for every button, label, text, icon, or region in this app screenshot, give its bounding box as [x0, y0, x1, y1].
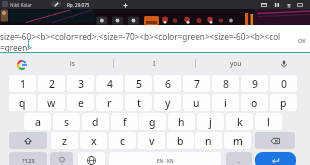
button[interactable]: you [195, 53, 277, 74]
button[interactable]: More [296, 1, 304, 8]
staticText: n [205, 134, 212, 148]
button[interactable]: j [197, 113, 224, 130]
button[interactable]: 5 [125, 75, 152, 92]
staticText: OK [298, 37, 306, 44]
button[interactable]: Enter [255, 152, 296, 165]
staticText: 6 [165, 77, 171, 91]
staticText: k [237, 115, 243, 129]
staticText: b [177, 134, 184, 148]
staticText: i [224, 96, 227, 110]
staticText: Nikil Kolar [10, 2, 32, 8]
staticText: EN - KN [157, 158, 174, 164]
button[interactable]: v [138, 132, 165, 149]
staticText: 9 [252, 77, 258, 91]
button[interactable]: l [255, 113, 282, 130]
staticText: p [280, 96, 287, 110]
button[interactable]: m [224, 132, 251, 149]
staticText: 5 [136, 77, 142, 91]
button[interactable]: a [24, 113, 51, 130]
staticText: c [120, 134, 126, 148]
staticText: e [78, 96, 84, 110]
staticText: size=-60><b><color=red>.<size=-70><b><co… [0, 31, 281, 42]
button[interactable]: Friends [273, 1, 281, 8]
button[interactable]: c [109, 132, 136, 149]
staticText: u [193, 96, 200, 110]
staticText: is [70, 59, 75, 68]
button[interactable]: e [67, 94, 94, 111]
button[interactable]: k [226, 113, 253, 130]
button[interactable]: Emoji [50, 152, 73, 165]
staticText: I [153, 59, 156, 68]
button[interactable]: 1 [9, 75, 36, 92]
button[interactable]: q [9, 94, 36, 111]
button[interactable]: z [51, 132, 78, 149]
button[interactable]: g [139, 113, 166, 130]
button[interactable]: b [167, 132, 194, 149]
button[interactable]: d [82, 113, 109, 130]
button[interactable]: 6 [154, 75, 181, 92]
staticText: j [209, 115, 212, 129]
button[interactable]: 8 [212, 75, 239, 92]
staticText: Rp. 29.075 [67, 2, 90, 8]
button[interactable]: Voice input [270, 57, 298, 71]
button[interactable]: Change language [78, 152, 105, 165]
staticText: s [64, 115, 70, 129]
button[interactable]: Space [109, 152, 221, 165]
button[interactable]: Backspace [255, 132, 295, 149]
staticText: w [47, 96, 56, 110]
button[interactable]: . [226, 152, 252, 165]
button[interactable]: ?123 [9, 152, 47, 165]
staticText: x [91, 134, 97, 148]
button[interactable]: 4 [96, 75, 123, 92]
button[interactable]: Google [10, 57, 33, 72]
button[interactable]: 7 [183, 75, 210, 92]
staticText: 3 [78, 77, 84, 91]
button[interactable]: 9 [241, 75, 268, 92]
staticText: ?123 [22, 157, 35, 165]
staticText: 0 [281, 77, 287, 91]
staticText: 4 [107, 77, 113, 91]
button[interactable]: n [195, 132, 222, 149]
button[interactable]: y [154, 94, 181, 111]
staticText: a [35, 115, 41, 129]
staticText: d [92, 115, 99, 129]
staticText: v [149, 134, 155, 148]
button[interactable]: 3 [67, 75, 94, 92]
button[interactable]: x [80, 132, 107, 149]
staticText: o [251, 96, 258, 110]
button[interactable]: w [38, 94, 65, 111]
button[interactable]: Add coins [122, 2, 129, 9]
button[interactable]: r [96, 94, 123, 111]
staticText: m [233, 134, 243, 148]
staticText: 1 [20, 77, 26, 91]
button[interactable]: p [270, 94, 297, 111]
button[interactable]: Edit name [51, 1, 61, 7]
button[interactable]: OK [296, 35, 308, 46]
staticText: 2 [49, 77, 55, 91]
staticText: 8 [223, 77, 229, 91]
button[interactable]: is [31, 53, 113, 74]
button[interactable]: I [113, 53, 195, 74]
staticText: t [137, 96, 141, 110]
staticText: r [107, 96, 112, 110]
button[interactable]: Shift [9, 132, 47, 149]
button[interactable]: f [111, 113, 138, 130]
staticText: y [165, 96, 171, 110]
staticText: f [123, 115, 127, 129]
button[interactable]: t [125, 94, 152, 111]
button[interactable]: h [168, 113, 195, 130]
button[interactable]: Shop [260, 1, 268, 8]
staticText: h [178, 115, 185, 129]
button[interactable]: 2 [38, 75, 65, 92]
staticText: =green> [0, 42, 32, 53]
button[interactable]: i [212, 94, 239, 111]
staticText: l [267, 115, 270, 129]
staticText: g [149, 115, 156, 129]
button[interactable]: 0 [270, 75, 297, 92]
button[interactable]: o [241, 94, 268, 111]
staticText: z [62, 134, 67, 148]
button[interactable]: s [53, 113, 80, 130]
button[interactable]: u [183, 94, 210, 111]
button[interactable]: Ranking [285, 1, 293, 8]
staticText: . [238, 156, 240, 165]
